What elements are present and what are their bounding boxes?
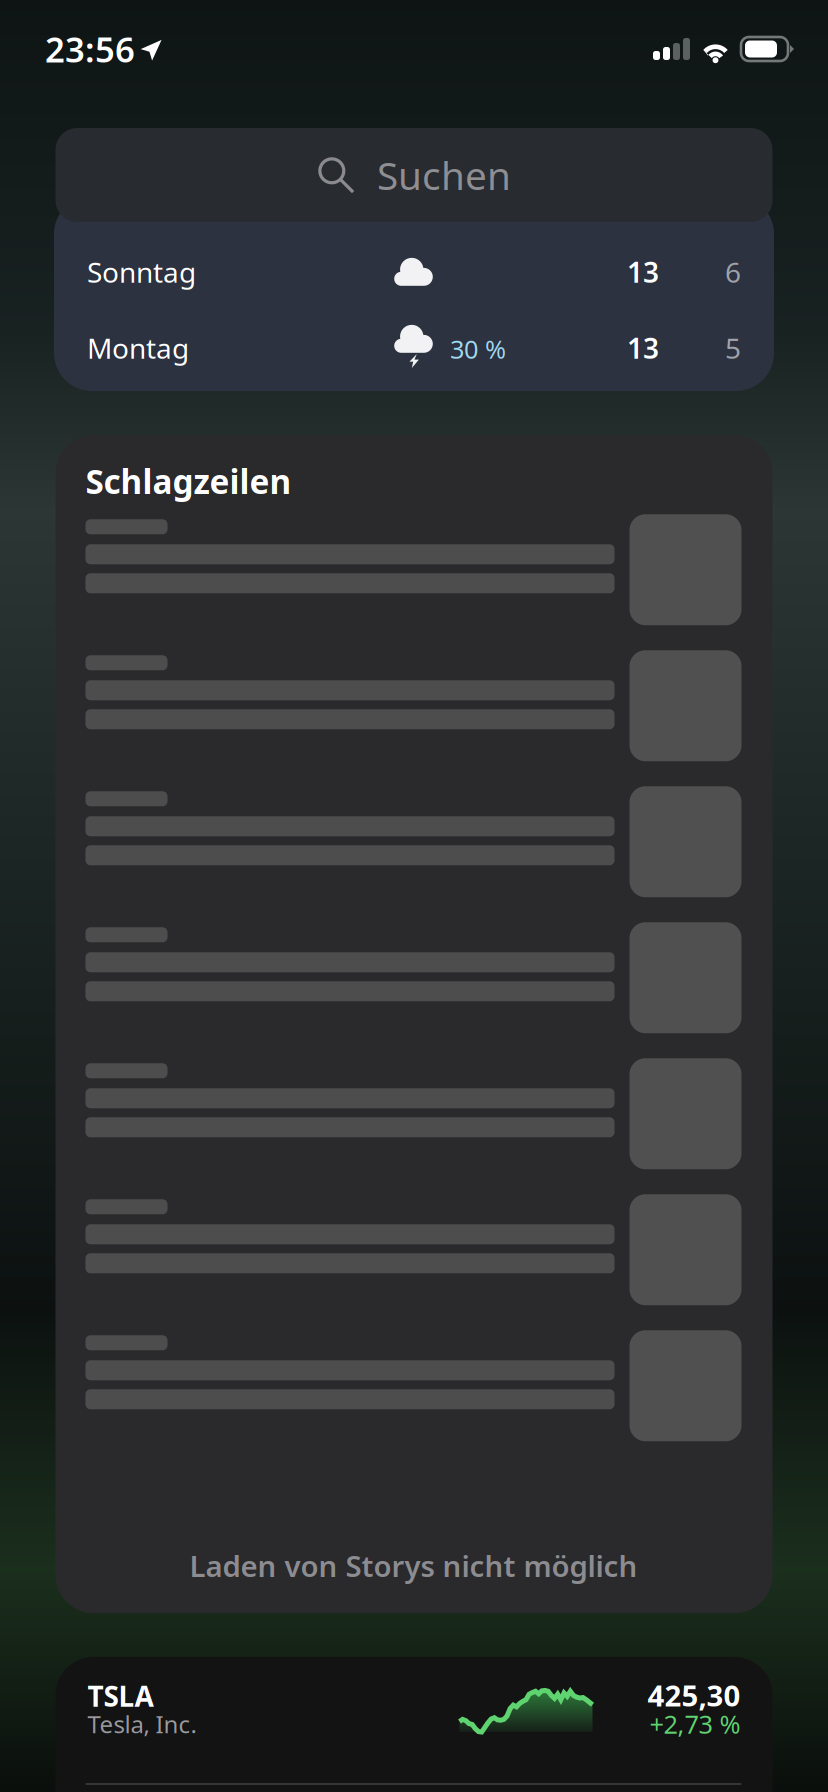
staticText: TSLA <box>87 1677 153 1715</box>
staticText: Sonntag <box>87 253 196 291</box>
staticText: 13 <box>627 253 659 291</box>
staticText: +2,73 % <box>649 1707 740 1741</box>
button[interactable]: Sonntag <box>54 196 774 391</box>
staticText: 6 <box>725 253 741 291</box>
staticText: 23:56 <box>45 26 135 72</box>
button[interactable]: TSLA <box>55 1657 772 1792</box>
button[interactable]: Suchen <box>55 128 772 222</box>
staticText: 13 <box>627 329 659 367</box>
staticText: 425,30 <box>647 1675 740 1714</box>
staticText: Suchen <box>377 149 511 201</box>
staticText: 5 <box>725 329 741 367</box>
staticText: Montag <box>87 329 189 367</box>
button[interactable]: Schlagzeilen <box>55 435 772 1613</box>
staticText: Tesla, Inc. <box>87 1708 196 1740</box>
staticText: 30 % <box>450 332 506 366</box>
staticText: Schlagzeilen <box>85 459 291 503</box>
staticText: Laden von Storys nicht möglich <box>189 1546 637 1585</box>
